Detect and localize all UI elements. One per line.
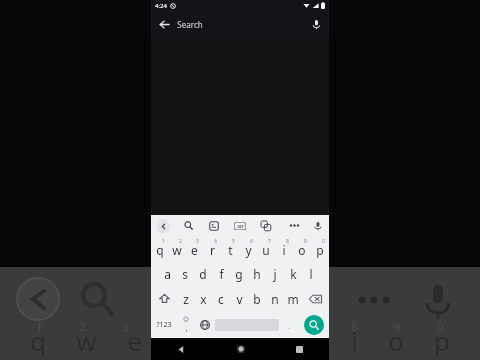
- button[interactable]: n: [266, 286, 284, 311]
- staticText: 1: [36, 319, 43, 334]
- staticText: o: [388, 323, 404, 358]
- staticText: x: [200, 291, 207, 307]
- staticText: p: [316, 242, 324, 258]
- button[interactable]: Back: [151, 338, 211, 360]
- staticText: 3: [196, 238, 199, 245]
- button[interactable]: Search: [177, 11, 303, 37]
- staticText: 9: [304, 238, 307, 245]
- button[interactable]: 5: [221, 236, 239, 261]
- staticText: l: [309, 266, 313, 282]
- button[interactable]: z: [177, 286, 194, 311]
- staticText: 8: [286, 238, 289, 245]
- button[interactable]: Search: [299, 311, 329, 338]
- button[interactable]: Backspace: [302, 286, 329, 311]
- staticText: o: [298, 242, 306, 258]
- button[interactable]: b: [248, 286, 266, 311]
- button[interactable]: d: [194, 261, 212, 286]
- button[interactable]: 0: [311, 236, 329, 261]
- button[interactable]: m: [284, 286, 302, 311]
- staticText: 0: [437, 319, 444, 334]
- staticText: i: [282, 242, 286, 258]
- staticText: k: [290, 266, 297, 282]
- button[interactable]: Voice search: [303, 11, 329, 37]
- staticText: 7: [268, 238, 271, 245]
- staticText: 2: [179, 238, 182, 245]
- button[interactable]: j: [266, 261, 284, 286]
- staticText: 4: [214, 238, 217, 245]
- button[interactable]: x: [194, 286, 212, 311]
- staticText: 9: [394, 319, 401, 334]
- staticText: r: [210, 242, 215, 258]
- button[interactable]: 9: [293, 236, 311, 261]
- button[interactable]: a: [159, 261, 176, 286]
- button[interactable]: 7: [257, 236, 275, 261]
- staticText: 2: [79, 319, 86, 334]
- button[interactable]: l: [302, 261, 320, 286]
- staticText: d: [199, 266, 207, 282]
- staticText: b: [253, 291, 261, 307]
- staticText: n: [271, 291, 279, 307]
- staticText: GIF: [237, 224, 244, 229]
- button[interactable]: v: [230, 286, 248, 311]
- staticText: i: [351, 323, 358, 358]
- button[interactable]: k: [284, 261, 302, 286]
- staticText: 3: [122, 319, 129, 334]
- staticText: e: [191, 242, 198, 258]
- staticText: 5: [232, 238, 235, 245]
- staticText: Search: [177, 19, 203, 30]
- staticText: 4:24: [155, 2, 167, 10]
- staticText: q: [156, 242, 164, 258]
- button[interactable]: 8: [275, 236, 293, 261]
- staticText: a: [164, 266, 171, 282]
- button[interactable]: Search: [175, 215, 201, 236]
- button[interactable]: ?123: [151, 311, 177, 338]
- staticText: v: [236, 291, 243, 307]
- button[interactable]: Stickers: [201, 215, 227, 236]
- button[interactable]: Close toolbar: [151, 215, 175, 236]
- staticText: ?123: [156, 320, 172, 330]
- staticText: e: [127, 323, 142, 358]
- button[interactable]: Recent apps: [270, 338, 329, 360]
- staticText: w: [172, 242, 182, 258]
- staticText: 6: [250, 238, 253, 245]
- button[interactable]: s: [176, 261, 194, 286]
- staticText: 0: [322, 238, 325, 245]
- button[interactable]: 1: [151, 236, 168, 261]
- button[interactable]: Translate: [253, 215, 279, 236]
- staticText: c: [218, 291, 224, 307]
- staticText: t: [228, 242, 233, 258]
- staticText: h: [253, 266, 261, 282]
- button[interactable]: Shift: [151, 286, 177, 311]
- staticText: 1: [162, 238, 165, 245]
- button[interactable]: 6: [239, 236, 257, 261]
- staticText: m: [287, 291, 299, 307]
- button[interactable]: 3: [185, 236, 203, 261]
- button[interactable]: GIF: [227, 215, 253, 236]
- button[interactable]: Home: [211, 338, 270, 360]
- staticText: y: [245, 242, 252, 258]
- button[interactable]: c: [212, 286, 230, 311]
- staticText: z: [183, 291, 189, 307]
- button[interactable]: f: [212, 261, 230, 286]
- staticText: u: [262, 242, 270, 258]
- button[interactable]: Back: [151, 11, 177, 37]
- staticText: .: [288, 319, 291, 331]
- button[interactable]: More options: [281, 215, 307, 236]
- staticText: s: [182, 266, 188, 282]
- button[interactable]: Change language: [195, 311, 215, 338]
- staticText: j: [273, 266, 277, 282]
- button[interactable]: Voice input: [307, 215, 329, 236]
- button[interactable]: g: [230, 261, 248, 286]
- staticText: p: [434, 323, 450, 358]
- staticText: g: [235, 266, 243, 282]
- button[interactable]: Comma: [177, 311, 195, 338]
- staticText: w: [76, 323, 97, 358]
- button[interactable]: 4: [203, 236, 221, 261]
- staticText: 8: [351, 319, 358, 334]
- button[interactable]: h: [248, 261, 266, 286]
- button[interactable]: 2: [168, 236, 185, 261]
- staticText: f: [219, 266, 224, 282]
- button[interactable]: Period: [279, 311, 299, 338]
- staticText: q: [30, 323, 46, 358]
